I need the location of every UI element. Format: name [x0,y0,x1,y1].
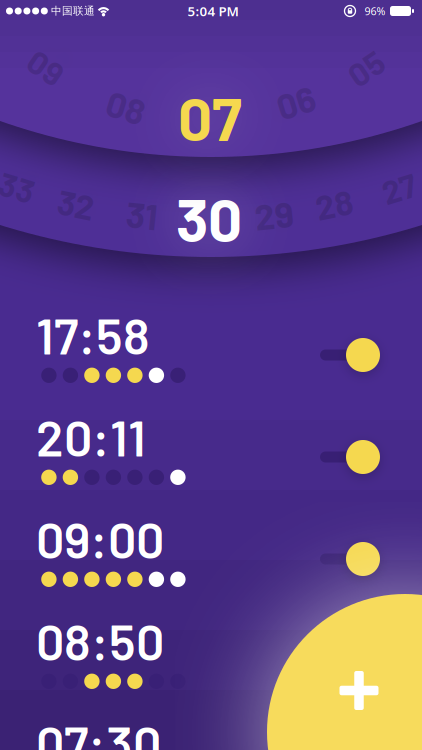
staticText: 09 [28,47,64,87]
button[interactable]: Alarm on [318,436,380,478]
staticText: 96% [364,4,385,18]
staticText: 29 [254,193,293,236]
staticText: 20:11 [36,406,146,466]
staticText: 05 [347,48,384,88]
button[interactable]: 17:58 [0,316,290,384]
staticText: 27 [382,168,416,208]
staticText: 07 [178,81,242,153]
button[interactable]: 09:00 [0,520,290,588]
staticText: 31 [126,193,158,236]
button[interactable]: Alarm on [318,538,380,580]
staticText: 06 [276,81,315,123]
staticText: 5:04 PM [187,2,238,20]
staticText: 28 [315,184,352,224]
button[interactable]: 20:11 [0,418,290,486]
button[interactable]: Add alarm [267,594,422,750]
staticText: 中国联通 [51,4,95,17]
button[interactable]: 07:30 [0,724,290,750]
staticText: 09:00 [36,508,164,568]
staticText: 07:30 [36,712,161,750]
staticText: 30 [176,182,242,254]
staticText: 32 [57,184,94,224]
staticText: 08:50 [36,610,164,670]
button[interactable]: 08:50 [0,622,290,690]
staticText: 17:58 [36,304,150,364]
staticText: 08 [106,86,145,128]
button[interactable]: Alarm on [318,334,380,376]
staticText: 33 [0,167,35,207]
